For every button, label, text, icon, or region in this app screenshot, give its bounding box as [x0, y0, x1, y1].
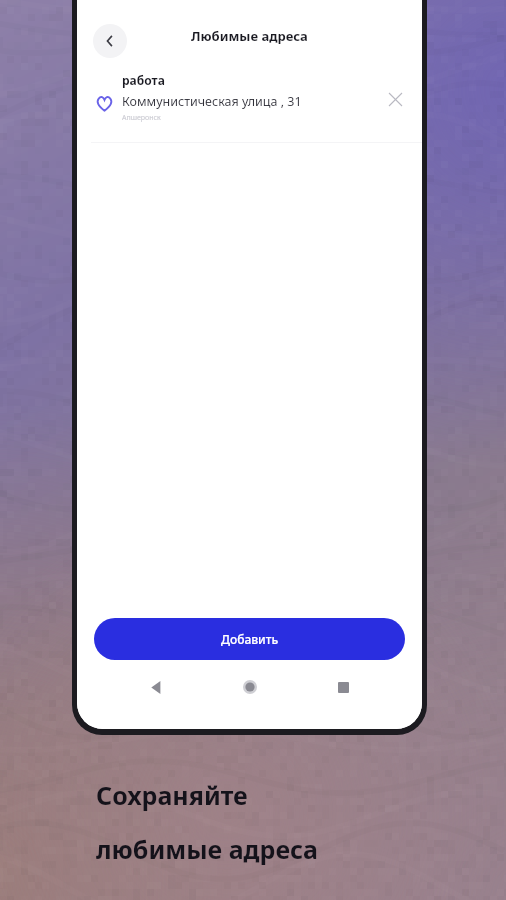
button[interactable]: Недавние [328, 672, 358, 702]
staticText: работа [122, 72, 165, 88]
staticText: Апшеронск [122, 113, 161, 123]
button[interactable]: Добавить [94, 618, 405, 660]
button[interactable]: Назад [93, 24, 127, 58]
staticText: Сохраняйте [96, 778, 248, 812]
button[interactable]: работа [77, 66, 422, 138]
button[interactable]: Удалить адрес [382, 86, 408, 112]
staticText: Любимые адреса [191, 27, 308, 45]
button[interactable]: Назад [141, 672, 171, 702]
staticText: Коммунистическая улица , 31 [122, 93, 302, 110]
button[interactable]: Домой [235, 672, 265, 702]
staticText: Добавить [221, 631, 279, 647]
staticText: любимые адреса [96, 832, 318, 866]
